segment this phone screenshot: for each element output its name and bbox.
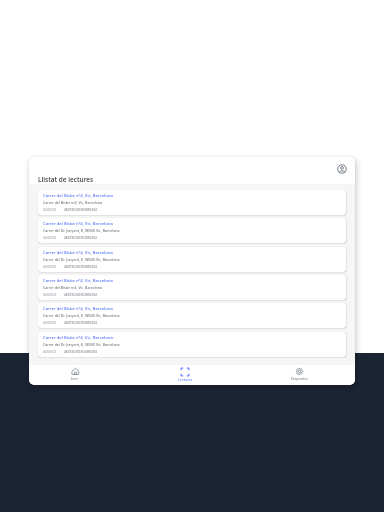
staticText: Carrer del Dr. Junyent, 8, 08500 Vic, Ba… [43,342,120,347]
staticText: 04/03/22 [43,350,57,354]
button[interactable]: Carrer del Bisbe nº4, Vic, Barcelona [38,332,346,357]
staticText: Llistat de lectures [38,175,94,184]
staticText: 484735330353855304 [64,208,97,212]
staticText: 04/03/22 [43,208,57,212]
staticText: Carrer del Dr. Junyent, 8, 08500 Vic, Ba… [43,228,120,233]
staticText: 484735330353855304 [64,321,97,325]
staticText: Lectures [178,377,193,382]
staticText: Dispositiu [291,376,308,381]
button[interactable]: Carrer del Bisbe nº4, Vic, Barcelona [38,275,346,300]
staticText: Carrer del Bisbe nº4, Vic, Barcelona [43,285,102,290]
staticText: 04/03/22 [43,265,57,269]
staticText: 04/03/22 [43,321,57,325]
button[interactable]: Lectures [162,365,208,385]
button[interactable]: Account [337,164,347,174]
staticText: Carrer del Bisbe nº4, Vic, Barcelona [43,193,113,199]
staticText: 484735330353855304 [64,265,97,269]
staticText: 484735330353855304 [64,350,97,354]
staticText: 484735330353855304 [64,293,97,297]
staticText: Carrer del Dr. Junyent, 8, 08500 Vic, Ba… [43,257,120,262]
staticText: Carrer del Bisbe nº4, Vic, Barcelona [43,335,113,341]
staticText: 04/03/22 [43,293,57,297]
staticText: 484735330353855304 [64,236,97,240]
staticText: Carrer del Bisbe nº4, Vic, Barcelona [43,306,113,312]
button[interactable]: Carrer del Bisbe nº4, Vic, Barcelona [38,247,346,272]
staticText: Carrer del Bisbe nº4, Vic, Barcelona [43,200,102,205]
button[interactable]: Carrer del Bisbe nº4, Vic, Barcelona [38,190,346,215]
button[interactable]: Carrer del Bisbe nº4, Vic, Barcelona [38,218,346,243]
button[interactable]: Carrer del Bisbe nº4, Vic, Barcelona [38,303,346,328]
button[interactable]: Dispositiu [276,365,322,385]
staticText: 04/03/22 [43,236,57,240]
button[interactable]: Inici [52,365,98,385]
staticText: Inici [71,376,79,381]
staticText: Carrer del Bisbe nº4, Vic, Barcelona [43,221,113,227]
staticText: Carrer del Bisbe nº4, Vic, Barcelona [43,250,113,256]
staticText: Carrer del Dr. Junyent, 8, 08500 Vic, Ba… [43,313,120,318]
staticText: Carrer del Bisbe nº4, Vic, Barcelona [43,278,113,284]
